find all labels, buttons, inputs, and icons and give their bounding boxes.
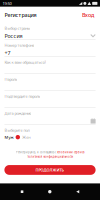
button[interactable]: Политикой конфиденциальности bbox=[26, 155, 73, 158]
button[interactable]: Recent apps bbox=[17, 186, 27, 197]
staticText: Вход bbox=[82, 11, 94, 18]
staticText: Пароль bbox=[4, 77, 17, 82]
staticText: Россия bbox=[4, 32, 22, 39]
staticText: Жен bbox=[22, 134, 30, 140]
staticText: Подтвердите пароль bbox=[4, 94, 40, 99]
button[interactable]: Вход bbox=[81, 9, 96, 20]
staticText: Регистрация bbox=[4, 11, 36, 18]
button[interactable]: Номер телефона bbox=[0, 40, 100, 57]
button[interactable]: Жен bbox=[22, 134, 30, 140]
button[interactable]: Выбор страны bbox=[0, 23, 100, 40]
button[interactable]: Дата рождения bbox=[0, 108, 100, 125]
staticText: Номер телефона bbox=[4, 43, 34, 48]
staticText: ПРОДОЛЖИТЬ bbox=[35, 167, 64, 173]
button[interactable]: Условиями сервиса bbox=[57, 151, 84, 154]
button[interactable]: Как к вам обращаться? bbox=[0, 57, 100, 74]
staticText: Политикой конфиденциальности bbox=[26, 155, 73, 158]
staticText: Как к вам обращаться? bbox=[4, 60, 46, 65]
staticText: 19:50 bbox=[3, 1, 12, 6]
staticText: Выберите пол bbox=[4, 128, 29, 133]
staticText: +7 bbox=[4, 49, 10, 56]
button[interactable]: Пароль bbox=[0, 74, 100, 91]
button[interactable]: Муж bbox=[4, 134, 13, 140]
button[interactable]: Подтвердите пароль bbox=[0, 91, 100, 108]
staticText: Условиями сервиса bbox=[57, 151, 84, 154]
button[interactable]: ПРОДОЛЖИТЬ bbox=[4, 165, 96, 175]
staticText: Регистрируясь, я соглашаюсь с bbox=[16, 151, 57, 154]
staticText: Выбор страны bbox=[4, 26, 30, 31]
staticText: Муж bbox=[4, 134, 13, 140]
button[interactable]: Home bbox=[44, 186, 55, 197]
button[interactable]: Back bbox=[72, 186, 83, 197]
staticText: Дата рождения bbox=[4, 111, 31, 116]
